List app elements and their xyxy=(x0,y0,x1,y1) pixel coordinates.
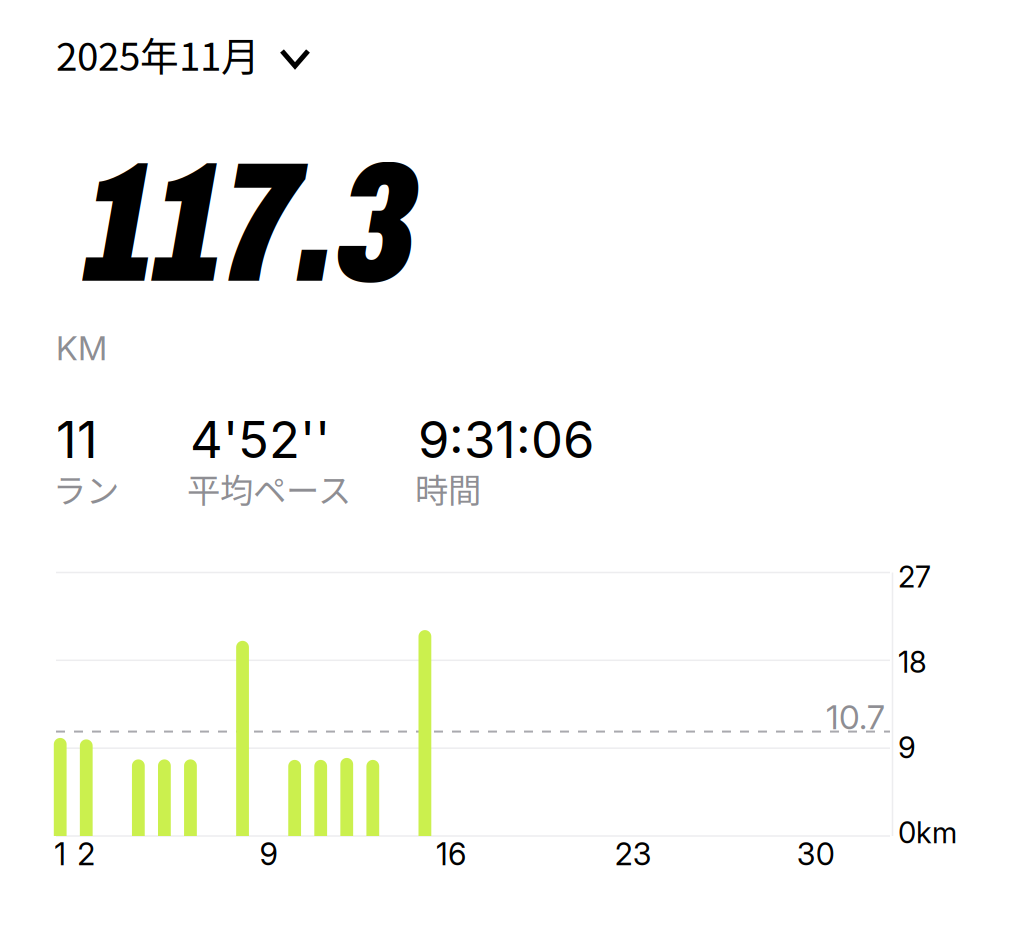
staticText: 30 xyxy=(797,835,835,872)
staticText: 117.3 xyxy=(86,132,417,316)
staticText: 4'52'' xyxy=(190,409,330,470)
staticText: 9:31:06 xyxy=(418,409,594,470)
button[interactable]: 2025年11月 xyxy=(0,22,456,86)
staticText: 9 xyxy=(898,730,916,765)
staticText: 27 xyxy=(898,559,931,595)
staticText: ラン xyxy=(53,464,119,512)
staticText: 時間 xyxy=(415,464,481,512)
staticText: 23 xyxy=(615,835,652,872)
staticText: 2 xyxy=(77,835,95,872)
staticText: 11 xyxy=(56,409,98,470)
staticText: 2025年11月 xyxy=(56,26,260,82)
staticText: 0km xyxy=(898,815,957,850)
staticText: 10.7 xyxy=(826,697,885,737)
staticText: 平均ペース xyxy=(187,464,351,512)
staticText: 9 xyxy=(260,835,278,872)
staticText: 18 xyxy=(898,644,927,680)
staticText: KM xyxy=(56,328,107,368)
staticText: 1 xyxy=(54,835,66,872)
staticText: 16 xyxy=(436,835,466,872)
